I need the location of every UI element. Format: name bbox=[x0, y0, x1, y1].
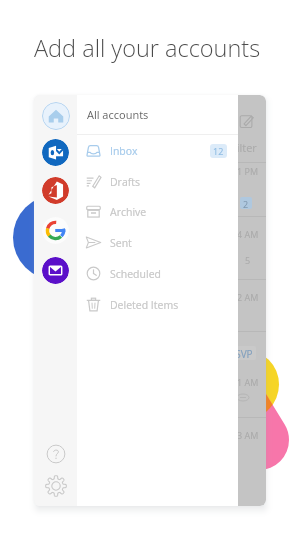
staticText: 3 AM bbox=[237, 429, 259, 441]
staticText: 2 bbox=[243, 198, 249, 210]
button[interactable]: Archive bbox=[77, 196, 238, 227]
staticText: All accounts bbox=[87, 107, 149, 122]
staticText: Deleted Items bbox=[110, 298, 179, 312]
button[interactable]: All accounts bbox=[42, 102, 70, 130]
staticText: 4 AM bbox=[237, 228, 259, 240]
staticText: Filter bbox=[231, 140, 257, 155]
staticText: 1 PM bbox=[237, 165, 258, 177]
button[interactable]: All accounts bbox=[77, 95, 238, 134]
button[interactable]: Outlook account bbox=[42, 139, 69, 166]
staticText: Scheduled bbox=[110, 267, 161, 281]
staticText: Sent bbox=[110, 236, 132, 250]
staticText: 5 bbox=[245, 254, 251, 266]
staticText: Inbox bbox=[110, 144, 138, 158]
button[interactable]: Inbox bbox=[77, 135, 238, 166]
staticText: RSVP bbox=[229, 347, 253, 360]
button[interactable]: Scheduled bbox=[77, 258, 238, 289]
button[interactable]: Compose bbox=[239, 114, 254, 129]
staticText: Drafts bbox=[110, 175, 141, 189]
button[interactable]: Sent bbox=[77, 227, 238, 258]
staticText: 2 AM bbox=[237, 291, 259, 303]
button[interactable]: Office account bbox=[42, 177, 69, 204]
staticText: 1 AM bbox=[237, 376, 259, 388]
button[interactable]: Settings bbox=[44, 474, 68, 498]
staticText: Add all your accounts bbox=[34, 32, 261, 64]
button[interactable]: Deleted Items bbox=[77, 289, 238, 320]
button[interactable]: RSVP bbox=[227, 346, 256, 360]
staticText: 12 bbox=[213, 145, 224, 157]
button[interactable]: Help bbox=[44, 442, 68, 466]
button[interactable]: Drafts bbox=[77, 166, 238, 197]
button[interactable]: Google account bbox=[42, 217, 69, 244]
button[interactable]: Mail account bbox=[42, 257, 69, 284]
staticText: Archive bbox=[110, 205, 147, 219]
